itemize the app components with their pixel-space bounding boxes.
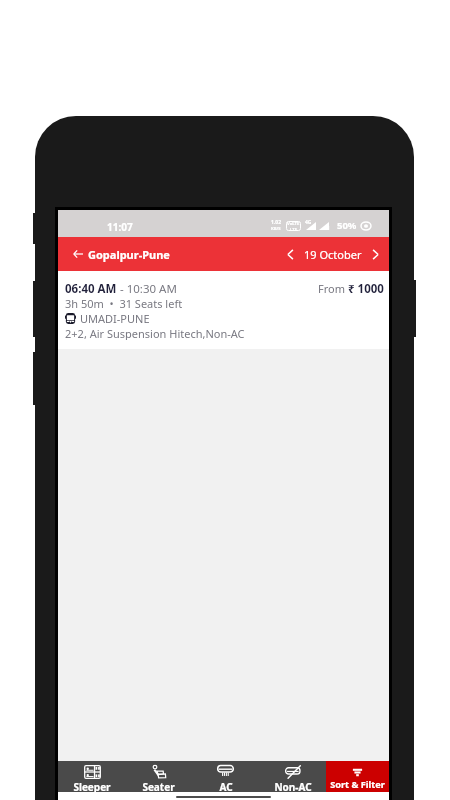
staticText: H (326, 225, 330, 231)
button[interactable]: Sort & Filter (326, 761, 389, 792)
staticText: 3h 50m • 31 Seats left (65, 296, 183, 311)
staticText: AC (219, 780, 233, 794)
staticText: Sleeper (73, 780, 111, 794)
other: Back (73, 249, 83, 259)
staticText: Seater (142, 780, 175, 794)
button[interactable]: Back (58, 237, 178, 271)
button[interactable]: Previous day (284, 248, 297, 261)
button[interactable]: Seater (125, 761, 192, 792)
staticText: From (318, 281, 348, 296)
staticText: 2+2, Air Suspension Hitech,Non-AC (65, 326, 245, 340)
button[interactable]: Next day (369, 248, 382, 261)
staticText: Non-AC (274, 780, 312, 794)
staticText: 06:40 AM (65, 281, 117, 296)
staticText: Gopalpur-Pune (88, 247, 170, 262)
staticText: KB/S (271, 226, 281, 232)
staticText: UMADI-PUNE (80, 311, 150, 326)
button[interactable]: AC (192, 761, 259, 792)
staticText: 1.02 (271, 219, 281, 226)
staticText: LTE (290, 227, 298, 231)
staticText: - 10:30 AM (117, 281, 177, 296)
button[interactable]: Non-AC (259, 761, 326, 792)
staticText: 4G (305, 219, 312, 226)
staticText: ₹ 1000 (348, 281, 384, 296)
button[interactable]: 19 October (304, 247, 362, 262)
staticText: 11:07 (107, 220, 133, 234)
button[interactable]: 06:40 AM (58, 271, 389, 349)
staticText: 50% (337, 219, 357, 232)
staticText: Sort & Filter (330, 778, 385, 791)
staticText: VoLTE (287, 221, 300, 227)
button[interactable]: Sleeper (58, 761, 125, 792)
